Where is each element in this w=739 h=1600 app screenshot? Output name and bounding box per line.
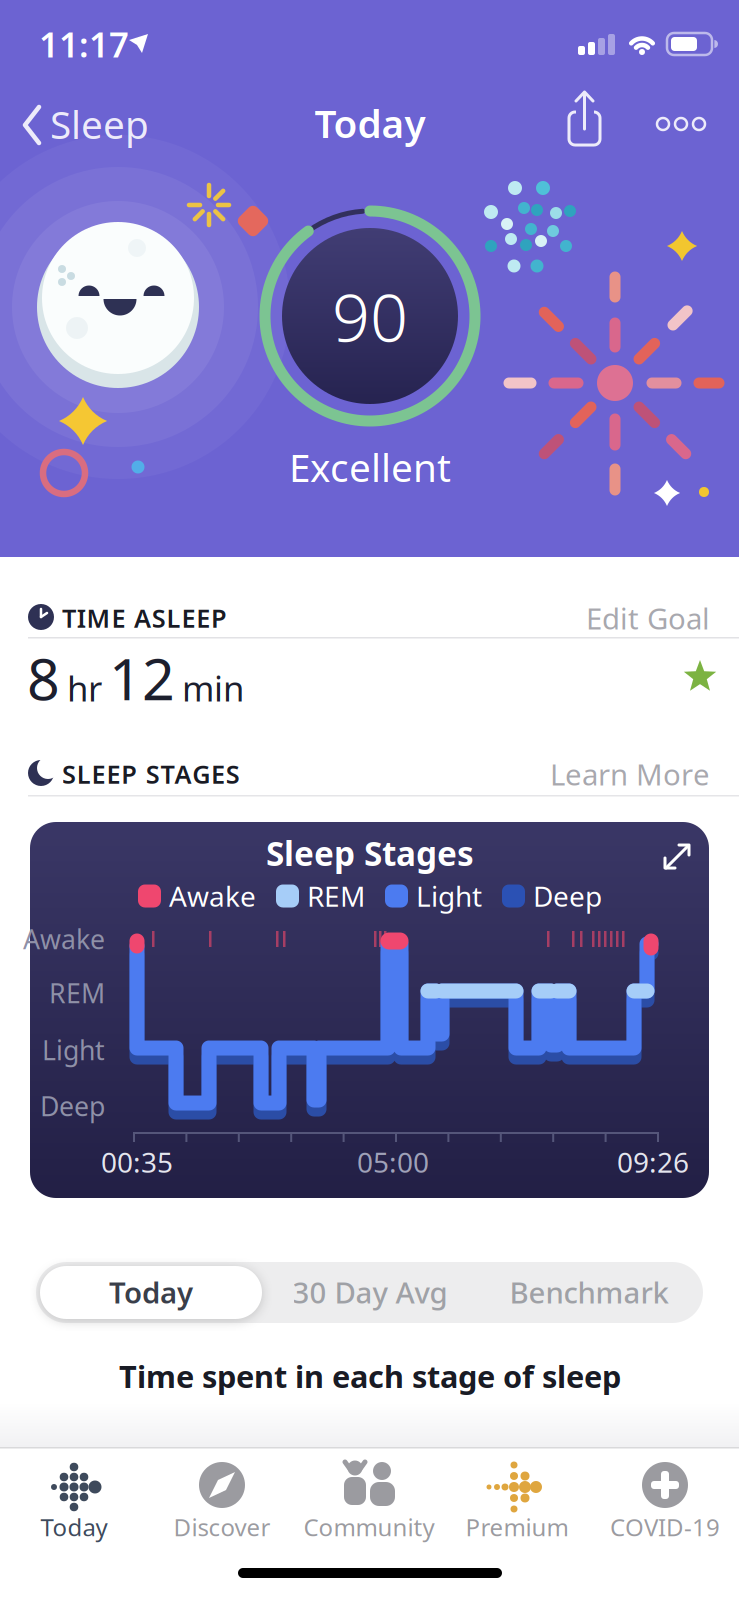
- staticText: hr: [67, 665, 102, 711]
- button[interactable]: [592, 1450, 739, 1545]
- staticText: 12: [109, 640, 175, 716]
- staticText: Learn More: [550, 754, 710, 793]
- staticText: Light: [42, 1032, 105, 1068]
- staticText: Light: [416, 877, 482, 915]
- button[interactable]: [148, 1450, 296, 1545]
- staticText: REM: [307, 877, 365, 915]
- button[interactable]: [482, 1262, 703, 1323]
- button[interactable]: [556, 88, 608, 150]
- button[interactable]: [296, 1450, 444, 1545]
- staticText: Deep: [533, 877, 602, 915]
- staticText: Today: [40, 1511, 107, 1543]
- button[interactable]: [444, 1450, 592, 1545]
- staticText: REM: [49, 975, 105, 1011]
- staticText: Edit Goal: [586, 598, 710, 637]
- staticText: 90: [332, 272, 408, 360]
- staticText: SLEEP STAGES: [62, 757, 240, 791]
- staticText: Sleep Stages: [266, 831, 474, 875]
- button[interactable]: [530, 748, 720, 798]
- staticText: COVID-19: [610, 1511, 720, 1543]
- staticText: Today: [109, 1272, 193, 1311]
- staticText: Benchmark: [509, 1272, 668, 1311]
- staticText: Deep: [40, 1088, 105, 1124]
- button[interactable]: [0, 1450, 148, 1545]
- staticText: TIME ASLEEP: [62, 601, 227, 635]
- staticText: 8: [27, 640, 60, 716]
- staticText: min: [182, 665, 244, 711]
- button[interactable]: [560, 592, 720, 642]
- staticText: Discover: [173, 1511, 270, 1543]
- staticText: 09:26: [617, 1143, 689, 1181]
- staticText: Time spent in each stage of sleep: [119, 1356, 621, 1396]
- staticText: Community: [303, 1511, 434, 1543]
- staticText: Premium: [465, 1511, 568, 1543]
- button[interactable]: [648, 830, 704, 882]
- staticText: Awake: [23, 921, 105, 957]
- button[interactable]: [648, 102, 712, 146]
- staticText: 00:35: [101, 1143, 173, 1181]
- staticText: Awake: [169, 877, 256, 915]
- staticText: Today: [314, 97, 425, 149]
- button[interactable]: [14, 96, 144, 152]
- staticText: 11:17: [39, 21, 129, 67]
- staticText: 30 Day Avg: [292, 1272, 447, 1311]
- staticText: 05:00: [357, 1143, 429, 1181]
- staticText: Sleep: [50, 98, 149, 150]
- staticText: Excellent: [289, 441, 451, 493]
- button[interactable]: [40, 1266, 262, 1319]
- button[interactable]: [262, 1262, 482, 1323]
